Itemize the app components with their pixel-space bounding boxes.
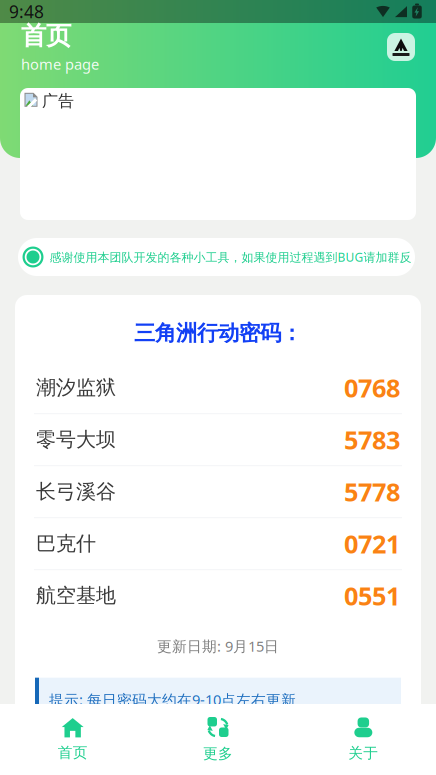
button[interactable]: 航空基地 (15, 570, 421, 622)
button[interactable]: 关于 (291, 704, 436, 775)
button[interactable]: 零号大坝 (15, 414, 421, 466)
staticText: 更多 (203, 744, 233, 762)
staticText: 巴克什 (36, 531, 96, 556)
button[interactable]: 巴克什 (15, 518, 421, 570)
staticText: 9:48 (9, 0, 44, 23)
staticText: 长弓溪谷 (36, 479, 116, 504)
staticText: 5783 (344, 423, 400, 456)
button[interactable]: 潮汐监狱 (15, 362, 421, 414)
staticText: 0551 (344, 579, 400, 612)
staticText: 航空基地 (36, 583, 116, 608)
staticText: 广告 (42, 91, 74, 111)
button[interactable]: 首页 (0, 704, 145, 775)
staticText: 感谢使用本团队开发的各种小工具，如果使用过程遇到BUG请加群反 (49, 249, 411, 265)
staticText: 首页 (21, 20, 71, 51)
staticText: 潮汐监狱 (36, 375, 116, 400)
staticText: 关于 (348, 744, 378, 762)
staticText: 0768 (344, 371, 400, 404)
button[interactable]: 更多 (145, 704, 291, 775)
staticText: 零号大坝 (36, 427, 116, 452)
button[interactable]: 感谢使用本团队开发的各种小工具，如果使用过程遇到BUG请加群反 (18, 238, 415, 276)
staticText: 提示: 每日密码大约在9-10点左右更新 (49, 690, 296, 709)
staticText: 更新日期: 9月15日 (157, 636, 279, 656)
button[interactable]: 长弓溪谷 (15, 466, 421, 518)
staticText: 首页 (58, 743, 88, 761)
staticText: home page (21, 54, 99, 74)
button[interactable]: App info (387, 33, 415, 61)
staticText: 三角洲行动密码： (134, 320, 302, 346)
staticText: 5778 (344, 475, 400, 508)
staticText: 0721 (344, 527, 400, 560)
